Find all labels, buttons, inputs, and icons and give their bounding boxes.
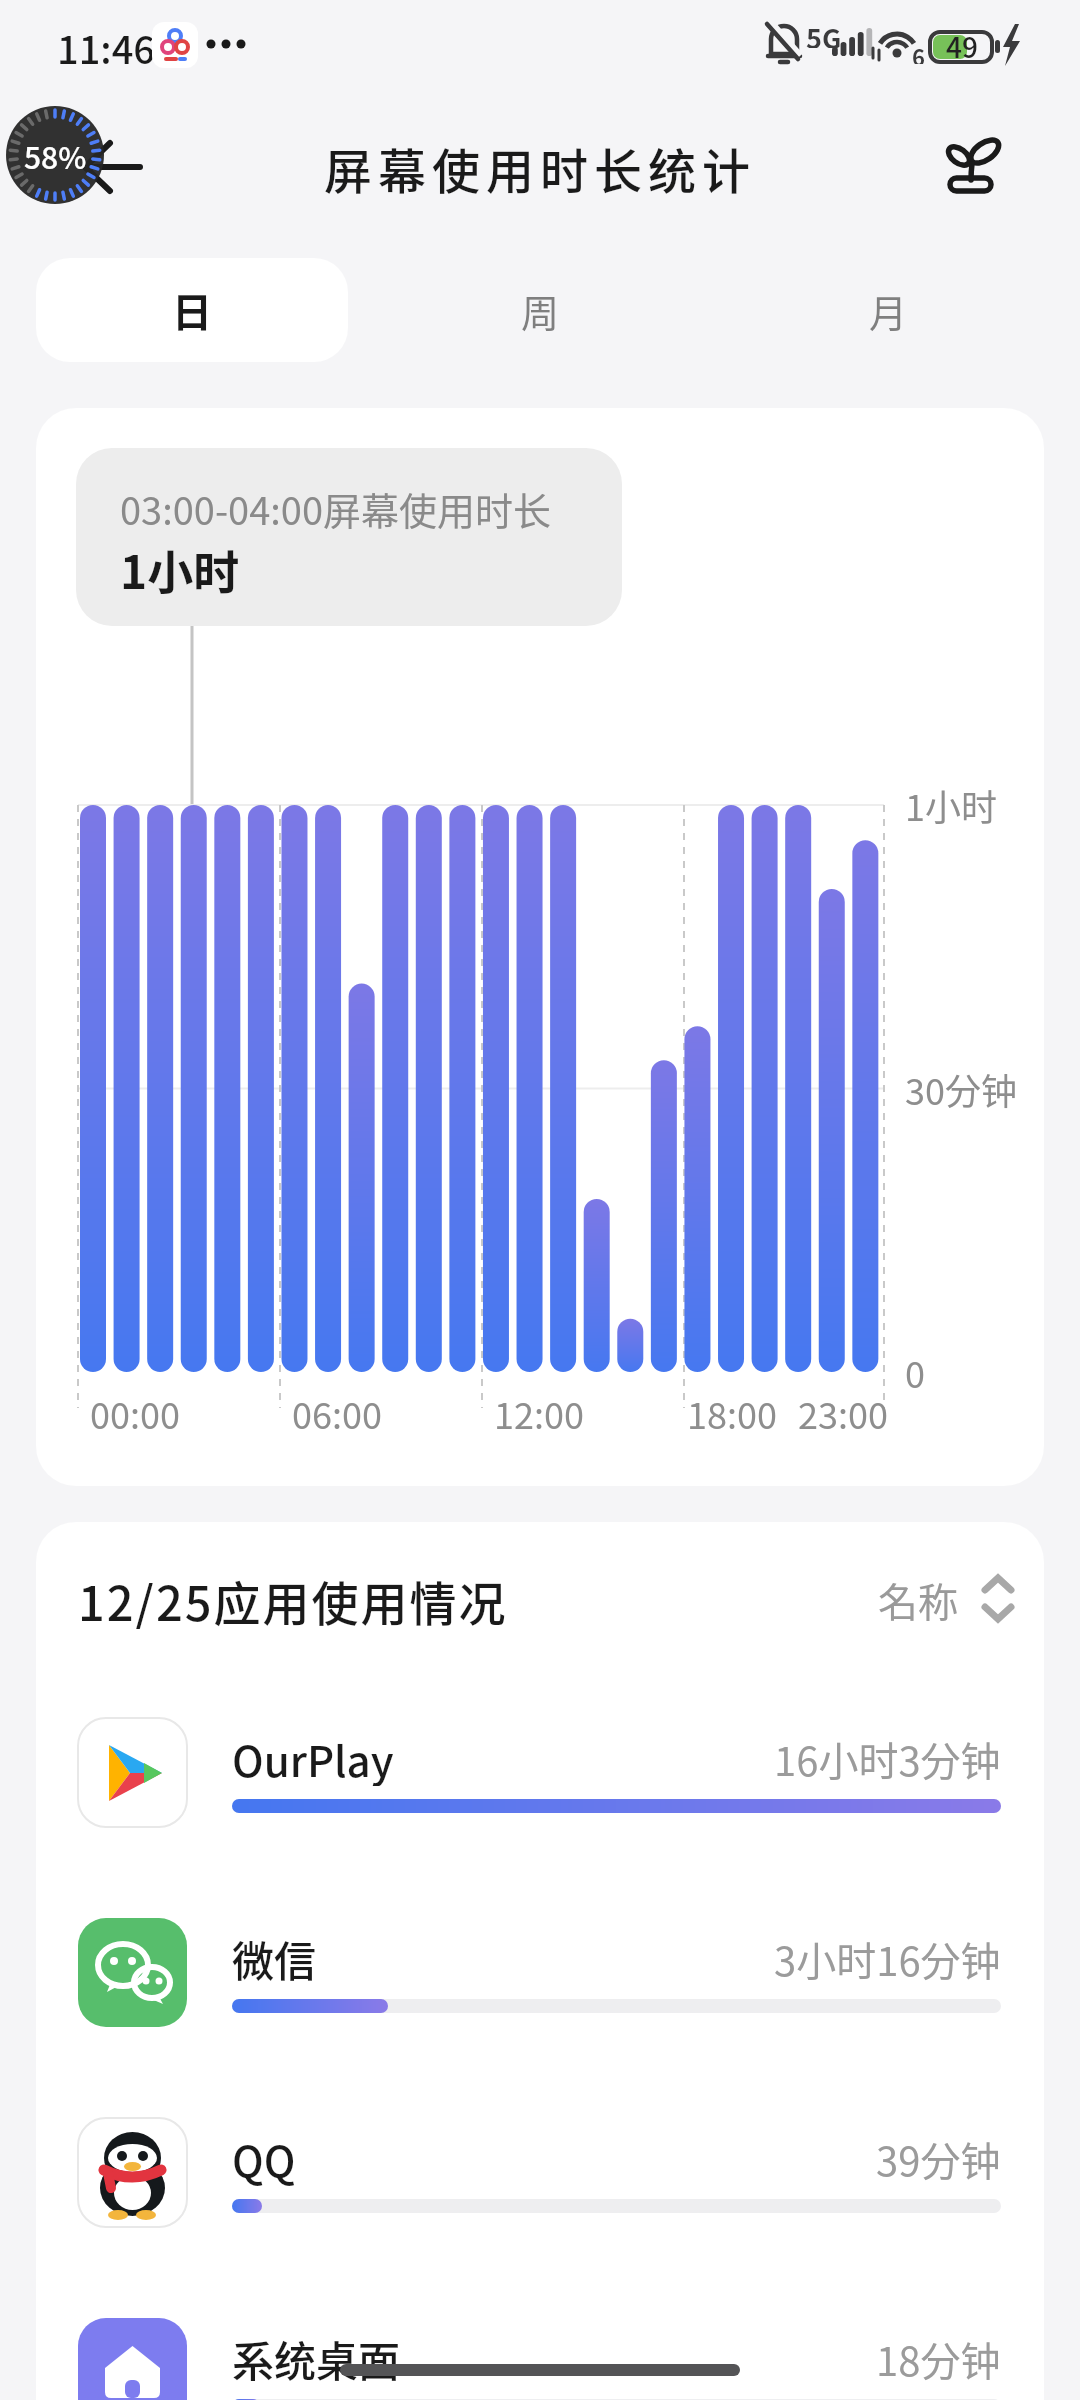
staticText: 12/25应用使用情况 (78, 1566, 508, 1634)
staticText: 6 (912, 40, 925, 64)
staticText: 00:00 (90, 1387, 180, 1439)
staticText: 周 (521, 283, 560, 338)
staticText: 3小时16分钟 (774, 1930, 1001, 1986)
staticText: 58% (24, 134, 87, 177)
button[interactable]: 名称 (856, 1562, 1026, 1638)
staticText: 49 (946, 26, 978, 62)
button[interactable]: 系统桌面 (36, 2318, 1044, 2400)
staticText: 30分钟 (905, 1063, 1017, 1115)
staticText: 18:00 (687, 1387, 777, 1439)
staticText: 23:00 (798, 1387, 888, 1439)
staticText: 屏幕使用时长统计 (324, 133, 757, 201)
staticText: 12:00 (494, 1387, 584, 1439)
staticText: 日 (172, 281, 212, 339)
staticText: 5G (806, 18, 842, 48)
staticText: 06:00 (292, 1387, 382, 1439)
button[interactable] (60, 125, 150, 205)
staticText: 18分钟 (876, 2330, 1001, 2386)
staticText: 微信 (232, 1928, 317, 1986)
staticText: QQ (232, 2128, 296, 2186)
button[interactable]: 月 (0, 0, 200, 80)
staticText: 名称 (878, 1571, 958, 1629)
button[interactable]: 微信 (36, 1918, 1044, 2118)
staticText: 系统桌面 (232, 2328, 401, 2386)
staticText: 39分钟 (876, 2130, 1001, 2186)
button[interactable]: 周 (0, 0, 200, 80)
button[interactable] (930, 120, 1020, 212)
staticText: OurPlay (232, 1728, 394, 1786)
staticText: 0 (905, 1346, 925, 1398)
button[interactable]: OurPlay (36, 1718, 1044, 1918)
button[interactable]: 日 (36, 258, 348, 362)
staticText: 1小时 (120, 536, 240, 598)
button[interactable]: QQ (36, 2118, 1044, 2318)
staticText: 11:46 (57, 20, 155, 70)
staticText: 月 (869, 283, 908, 338)
staticText: 16小时3分钟 (774, 1730, 1001, 1786)
staticText: 1小时 (905, 779, 997, 831)
staticText: 03:00-04:00屏幕使用时长 (120, 481, 552, 536)
